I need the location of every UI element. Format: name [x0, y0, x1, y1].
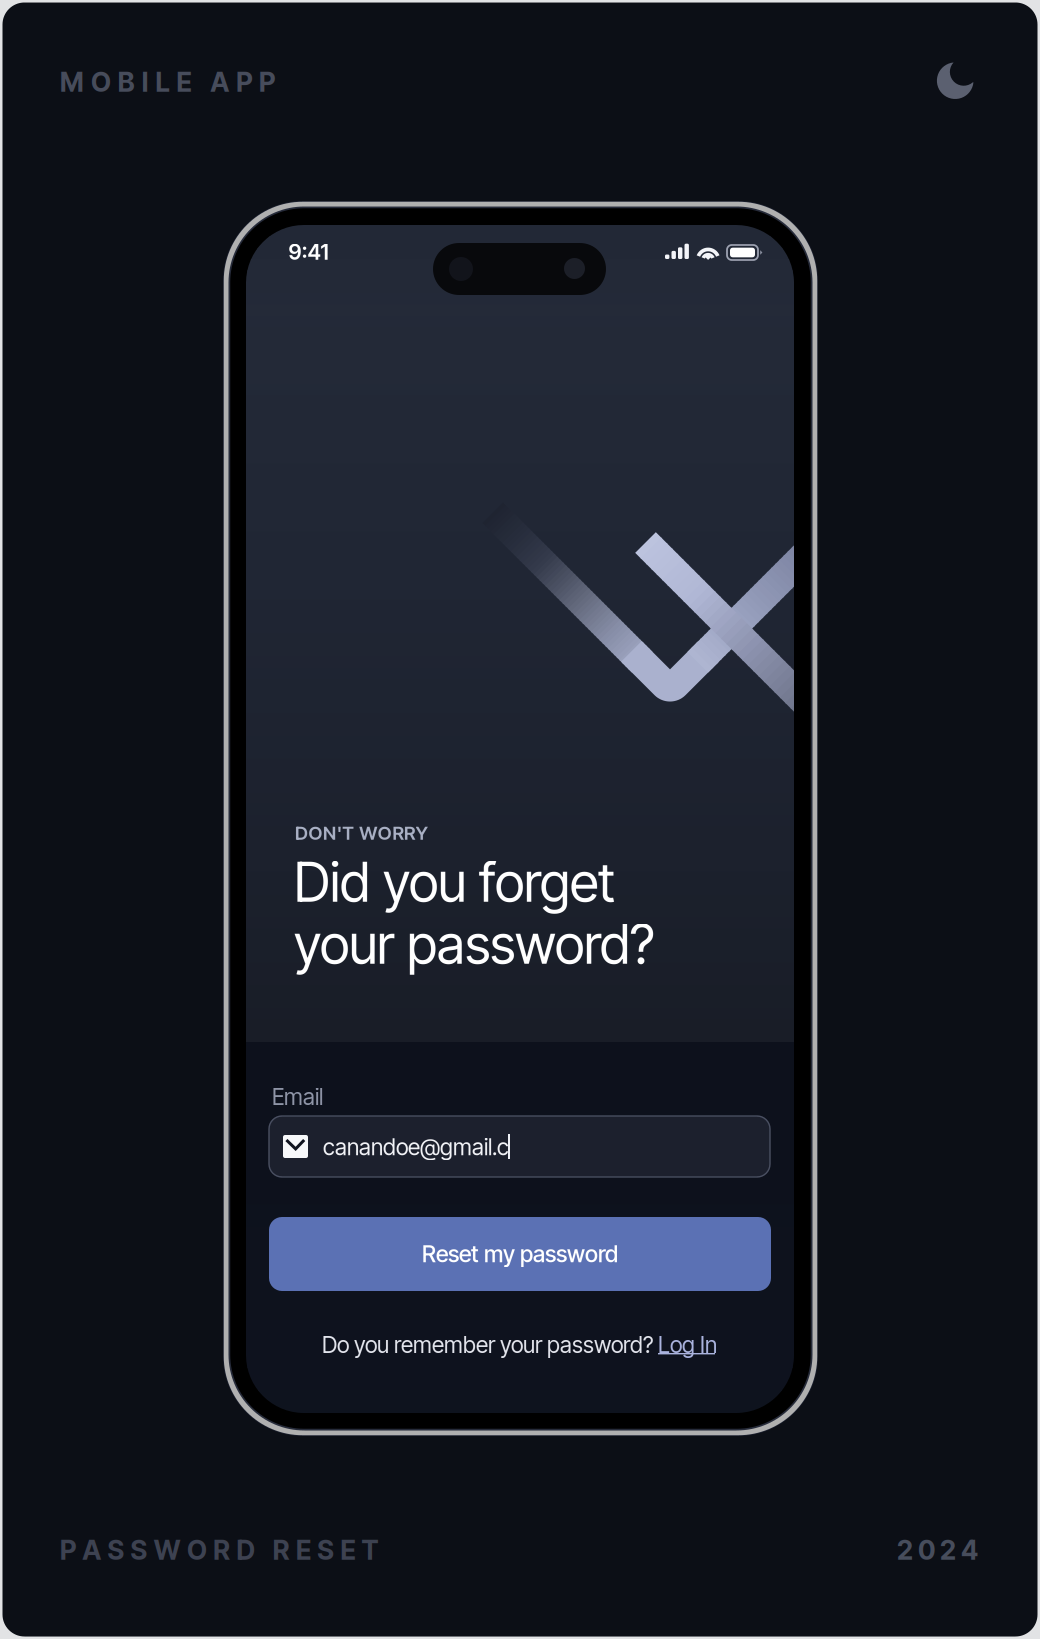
staticText: R: [392, 822, 403, 844]
staticText: B: [118, 66, 135, 98]
staticText: O: [187, 1534, 207, 1566]
staticText: D: [236, 1534, 255, 1566]
staticText: W: [154, 1534, 181, 1566]
staticText: M: [60, 66, 84, 98]
button[interactable]: Reset my password: [269, 1217, 771, 1291]
staticText: P: [60, 1534, 76, 1566]
staticText: I: [142, 66, 149, 98]
staticText: O: [91, 66, 111, 98]
staticText: Y: [415, 822, 427, 844]
staticText: 4: [961, 1534, 978, 1566]
staticText: A: [82, 1534, 101, 1566]
staticText: A: [210, 66, 229, 98]
staticText: P: [259, 66, 275, 98]
staticText: D: [295, 822, 308, 844]
staticText: R: [213, 1534, 230, 1566]
staticText: O: [378, 822, 392, 844]
staticText: canandoe@gmail.c: [323, 1133, 509, 1161]
staticText: S: [317, 1534, 334, 1566]
staticText: 0: [918, 1534, 935, 1566]
staticText: E: [176, 66, 191, 98]
staticText: R: [404, 822, 415, 844]
staticText: your password?: [294, 912, 655, 976]
button[interactable]: canandoe@gmail.c: [269, 1116, 770, 1177]
staticText: T: [362, 1534, 379, 1566]
staticText: P: [236, 66, 252, 98]
button[interactable]: Log In: [658, 1331, 720, 1357]
staticText: Log In: [658, 1331, 717, 1358]
staticText: L: [156, 66, 170, 98]
staticText: N: [323, 822, 336, 844]
staticText: E: [340, 1534, 355, 1566]
staticText: Did you forget: [294, 850, 615, 914]
button[interactable]: M: [60, 68, 300, 96]
staticText: Do you remember your password?: [322, 1331, 653, 1358]
button[interactable]: Toggle dark mode: [936, 61, 976, 101]
staticText: Email: [272, 1083, 323, 1110]
staticText: W: [359, 822, 377, 844]
staticText: 2: [940, 1534, 956, 1566]
staticText: T: [342, 822, 354, 844]
staticText: 2: [897, 1534, 913, 1566]
staticText: S: [107, 1534, 124, 1566]
staticText: 9:41: [288, 239, 328, 265]
staticText: ': [337, 822, 342, 844]
staticText: R: [273, 1534, 290, 1566]
staticText: S: [131, 1534, 148, 1566]
staticText: E: [296, 1534, 311, 1566]
staticText: Reset my password: [422, 1240, 618, 1268]
staticText: O: [309, 822, 323, 844]
